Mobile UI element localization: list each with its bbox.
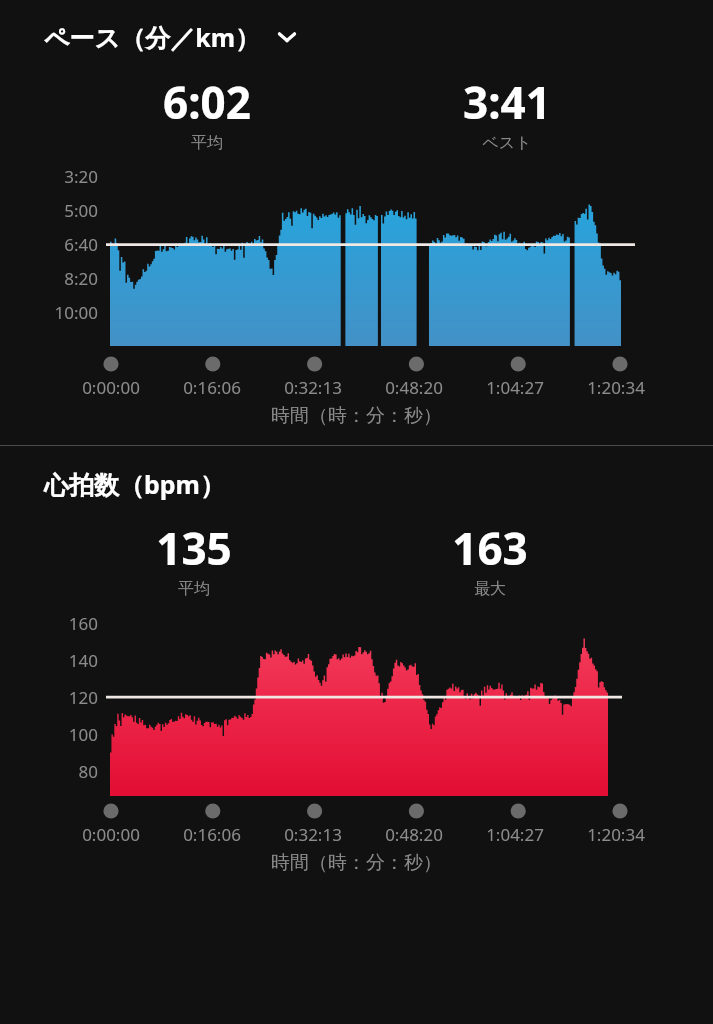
staticText: 6:02: [163, 72, 251, 132]
staticText: 80: [78, 760, 98, 783]
staticText: 1:04:27: [486, 376, 544, 399]
staticText: 5:00: [64, 199, 98, 222]
staticText: 100: [68, 723, 98, 746]
other: 指標を変更: [273, 23, 301, 51]
staticText: 1:20:34: [587, 376, 645, 399]
staticText: ベスト: [482, 133, 532, 153]
staticText: 140: [68, 649, 98, 672]
staticText: 120: [68, 686, 98, 709]
staticText: 10:00: [54, 301, 98, 324]
staticText: 163: [452, 518, 528, 578]
staticText: 時間（時：分：秒）: [271, 404, 442, 428]
staticText: 心拍数（bpm）: [44, 467, 225, 501]
staticText: 平均: [178, 579, 210, 599]
staticText: 1:04:27: [486, 823, 544, 846]
staticText: 0:32:13: [284, 376, 342, 399]
staticText: 0:32:13: [284, 823, 342, 846]
staticText: 160: [68, 612, 98, 635]
staticText: 6:40: [64, 233, 98, 256]
staticText: 0:16:06: [183, 823, 241, 846]
staticText: 135: [156, 518, 232, 578]
staticText: 時間（時：分：秒）: [271, 851, 442, 875]
staticText: 0:00:00: [82, 823, 140, 846]
staticText: 平均: [191, 133, 223, 153]
button[interactable]: ペース（分／km）: [44, 20, 713, 54]
staticText: 1:20:34: [587, 823, 645, 846]
staticText: 0:16:06: [183, 376, 241, 399]
staticText: 0:00:00: [82, 376, 140, 399]
staticText: 0:48:20: [385, 376, 443, 399]
staticText: 3:20: [64, 165, 98, 188]
staticText: 0:48:20: [385, 823, 443, 846]
staticText: 最大: [474, 579, 506, 599]
staticText: 3:41: [463, 72, 551, 132]
staticText: ペース（分／km）: [44, 20, 261, 54]
staticText: 8:20: [64, 267, 98, 290]
